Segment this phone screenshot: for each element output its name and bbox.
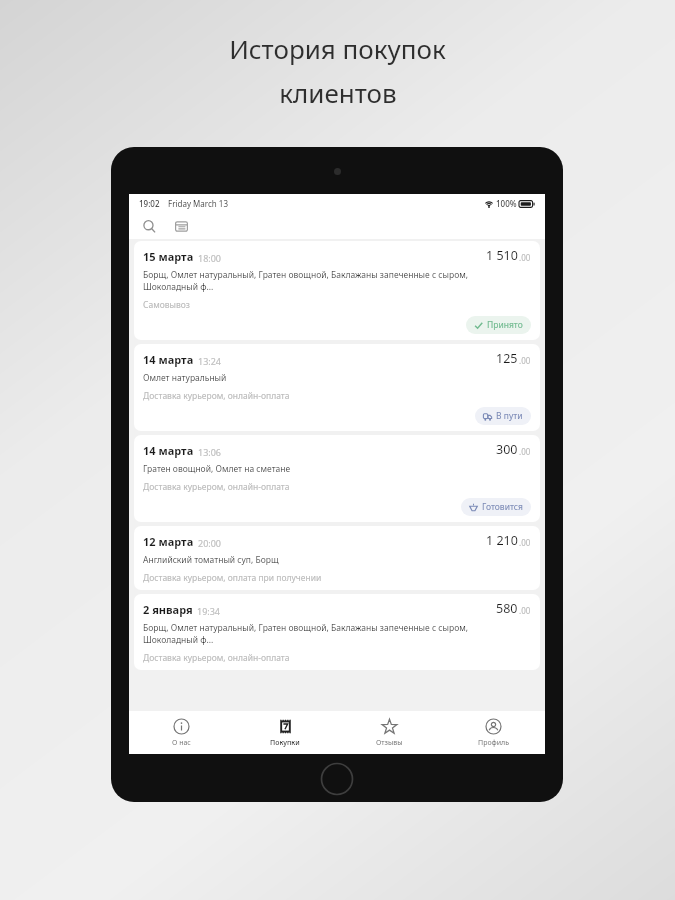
staticText: .00 <box>519 446 531 457</box>
staticText: 125 <box>496 350 518 367</box>
button[interactable]: 2 января <box>134 594 540 670</box>
staticText: 19:02 <box>139 198 160 209</box>
staticText: Покупки <box>270 738 300 748</box>
staticText: Борщ, Омлет натуральный, Гратен овощной,… <box>143 622 469 646</box>
staticText: .00 <box>519 537 531 548</box>
staticText: Доставка курьером, онлайн-оплата <box>143 652 290 664</box>
staticText: 19:34 <box>197 605 221 617</box>
button[interactable]: 15 марта <box>134 241 540 340</box>
button[interactable]: О нас <box>129 711 233 754</box>
staticText: 15 марта <box>143 249 194 264</box>
button[interactable]: Filter by date <box>170 215 192 237</box>
staticText: 300 <box>496 441 518 458</box>
staticText: Доставка курьером, онлайн-оплата <box>143 390 290 402</box>
button[interactable]: Готовится <box>461 498 531 516</box>
staticText: 580 <box>496 600 518 617</box>
button[interactable]: Профиль <box>441 711 545 754</box>
staticText: Отзывы <box>376 738 403 748</box>
staticText: 14 марта <box>143 352 194 367</box>
staticText: Friday March 13 <box>168 198 228 209</box>
staticText: Доставка курьером, оплата при получении <box>143 572 322 584</box>
staticText: .00 <box>519 605 531 616</box>
button[interactable]: Search <box>138 215 160 237</box>
staticText: 12 марта <box>143 534 194 549</box>
staticText: 1 210 <box>486 532 518 549</box>
button[interactable]: 14 марта <box>134 435 540 522</box>
button[interactable]: Покупки <box>233 711 337 754</box>
staticText: Профиль <box>478 738 509 748</box>
staticText: 18:00 <box>198 252 222 264</box>
staticText: О нас <box>172 738 191 748</box>
staticText: 14 марта <box>143 443 194 458</box>
staticText: Готовится <box>482 501 523 513</box>
staticText: Борщ, Омлет натуральный, Гратен овощной,… <box>143 269 469 293</box>
staticText: 2 января <box>143 602 193 617</box>
staticText: Самовывоз <box>143 299 190 311</box>
staticText: клиентов <box>279 75 397 110</box>
staticText: Принято <box>487 319 523 331</box>
button[interactable]: 12 марта <box>134 526 540 590</box>
staticText: Омлет натуральный <box>143 372 227 384</box>
button[interactable]: Принято <box>466 316 531 334</box>
button[interactable]: 14 марта <box>134 344 540 431</box>
staticText: 100% <box>496 198 517 209</box>
button[interactable]: Отзывы <box>337 711 441 754</box>
staticText: 13:24 <box>198 355 222 367</box>
staticText: 13:06 <box>198 446 222 458</box>
staticText: .00 <box>519 252 531 263</box>
staticText: 20:00 <box>198 537 222 549</box>
staticText: Английский томатный суп, Борщ <box>143 554 279 566</box>
button[interactable]: В пути <box>475 407 531 425</box>
staticText: История покупок <box>229 31 446 66</box>
staticText: Гратен овощной, Омлет на сметане <box>143 463 291 475</box>
staticText: .00 <box>519 355 531 366</box>
staticText: В пути <box>496 410 523 422</box>
staticText: Доставка курьером, онлайн-оплата <box>143 481 290 493</box>
staticText: 1 510 <box>486 247 518 264</box>
